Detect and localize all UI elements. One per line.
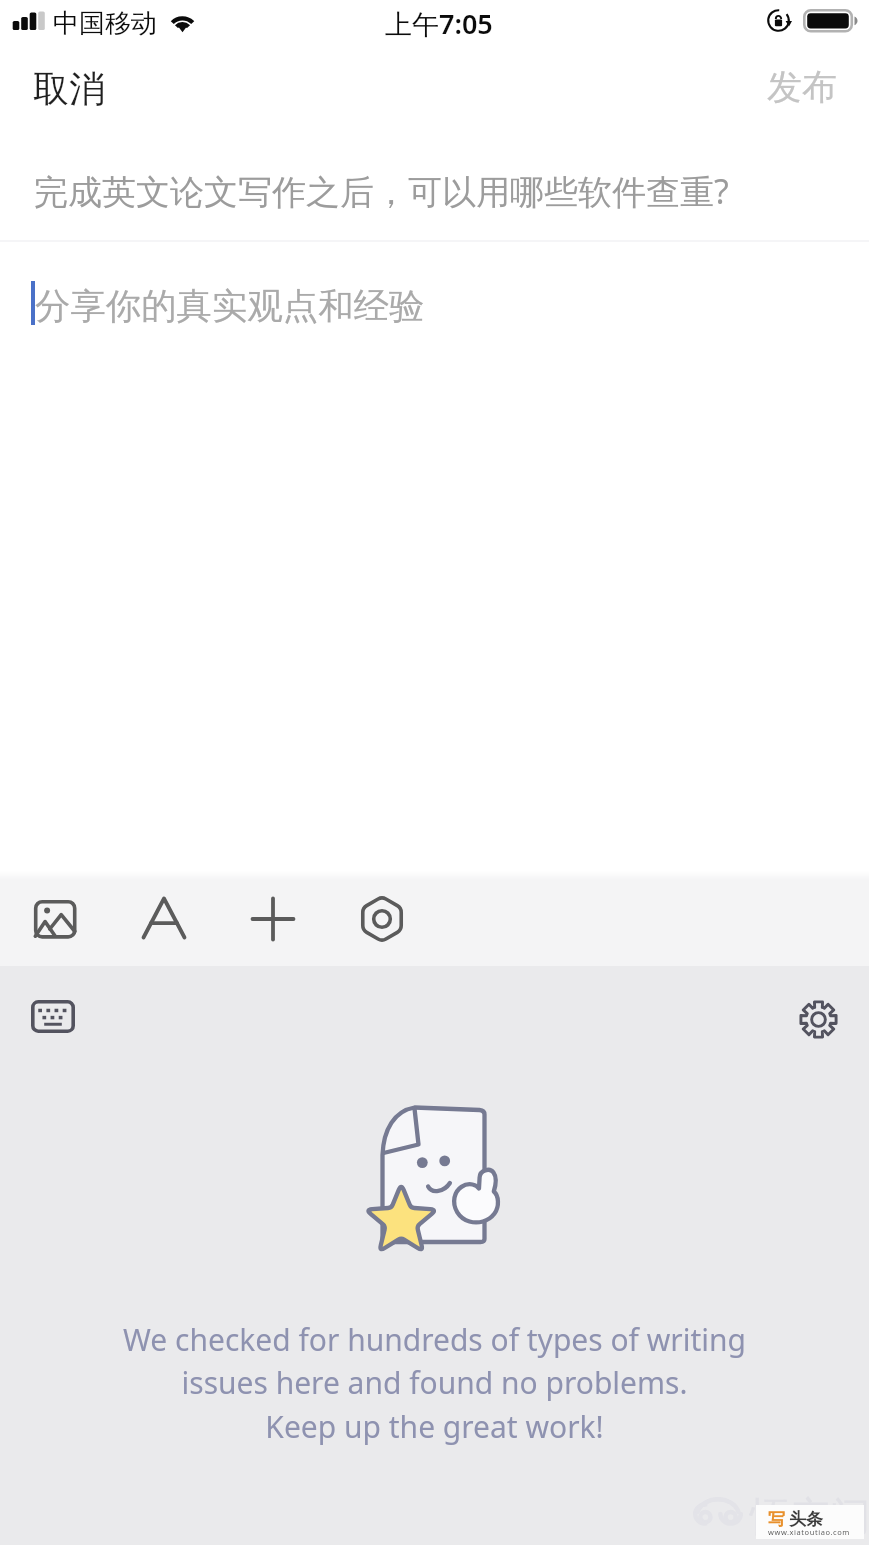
button[interactable]: 发布 [734,47,869,127]
button[interactable]: More options [344,881,420,957]
staticText: 上午7:05 [385,5,493,42]
button[interactable]: Add [235,881,311,957]
button[interactable]: Answer body [0,244,869,871]
button[interactable]: Settings [781,983,855,1055]
staticText: 写 [768,1509,785,1530]
staticText: 中国移动 [53,7,157,40]
staticText: 头条 [789,1509,823,1530]
button[interactable]: 取消 [0,48,120,128]
button[interactable] [0,131,869,240]
button[interactable]: Text style [126,880,202,956]
staticText: 分享你的真实观点和经验 [35,284,425,329]
staticText: 取消 [33,66,105,111]
staticText: We checked for hundreds of types of writ… [0,1319,869,1447]
button[interactable]: Keyboard [16,980,90,1052]
button[interactable]: Insert image [17,881,93,957]
staticText: www.xiatoutiao.com [768,1527,850,1537]
staticText: 发布 [767,65,837,109]
staticText: 悟空问答 [750,1491,869,1541]
staticText: 完成英文论文写作之后，可以用哪些软件查重? [34,168,834,214]
